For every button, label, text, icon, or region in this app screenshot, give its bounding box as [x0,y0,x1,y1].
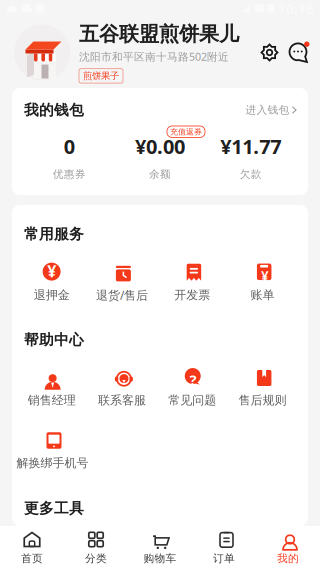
staticText: 欠款 [240,168,262,181]
button[interactable]: 购物车 [128,526,192,570]
button[interactable]: 销售经理 [16,368,87,408]
staticText: 销售经理 [28,393,76,408]
button[interactable]: 消息 [287,42,309,63]
button[interactable]: 售后规则 [227,368,297,408]
staticText: 余额 [149,168,171,181]
staticText: 0 [64,133,75,160]
button[interactable]: 订单 [192,526,256,570]
staticText: 退货/售后 [96,287,148,303]
button[interactable]: 我的 [256,526,320,570]
button[interactable]: 开发票 [157,263,227,302]
button[interactable]: ¥ [227,263,297,302]
button[interactable]: 设置 [259,42,280,63]
button[interactable]: 首页 [0,526,64,570]
staticText: 联系客服 [98,393,146,408]
button[interactable]: ? [157,368,227,408]
staticText: 购物车 [143,552,176,565]
staticText: 售后规则 [238,393,286,408]
staticText: 常用服务 [24,225,84,243]
button[interactable]: 退货/售后 [87,262,157,303]
staticText: 充值返券 [170,127,202,137]
button[interactable]: 进入钱包 [245,103,296,117]
staticText: 更多工具 [24,499,84,517]
staticText: ? [189,370,196,389]
button[interactable]: 分类 [64,526,128,570]
staticText: 解换绑手机号 [16,456,88,470]
staticText: 帮助中心 [24,331,84,349]
staticText: ¥11.77 [220,133,281,160]
staticText: 首页 [21,552,43,565]
staticText: ¥ [261,267,269,285]
button[interactable]: 联系客服 [87,368,157,408]
staticText: 订单 [213,552,235,565]
staticText: ¥ [47,260,56,282]
staticText: 五谷联盟煎饼果儿 [79,22,239,46]
staticText: 我的 [277,552,299,565]
staticText: 开发票 [174,288,210,302]
staticText: 常见问题 [168,393,216,408]
staticText: 账单 [250,288,274,302]
button[interactable]: ¥ [16,263,87,302]
staticText: 退押金 [34,288,70,302]
staticText: 我的钱包 [24,101,84,119]
staticText: 分类 [85,552,107,565]
staticText: ¥0.00 [135,133,185,160]
staticText: 进入钱包 [245,103,289,117]
staticText: 沈阳市和平区南十马路502附近 [79,49,229,64]
button[interactable]: 解换绑手机号 [16,431,87,470]
staticText: 煎饼果子 [83,70,119,82]
staticText: 优惠券 [53,168,86,181]
